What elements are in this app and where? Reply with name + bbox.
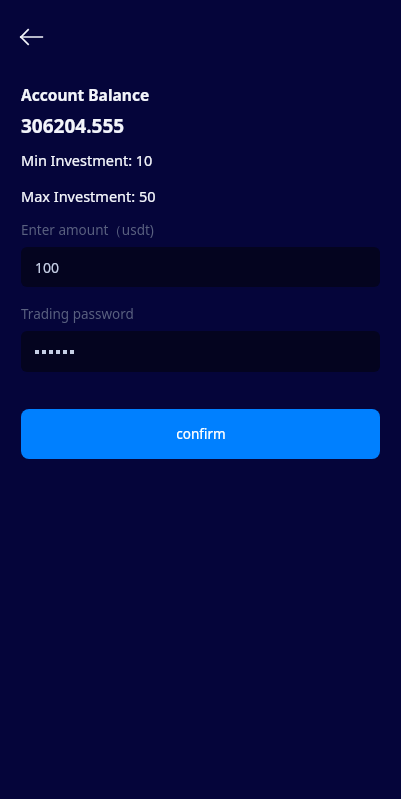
staticText: Max Investment: 50 (21, 186, 156, 206)
staticText: 306204.555 (21, 113, 125, 139)
staticText: Min Investment: 10 (21, 150, 153, 170)
button[interactable]: confirm (21, 409, 380, 459)
staticText: Account Balance (21, 84, 150, 105)
button[interactable]: 100 (21, 247, 380, 287)
staticText: Enter amount（usdt) (21, 221, 154, 239)
staticText: Trading password (21, 305, 134, 323)
staticText: 100 (35, 258, 60, 277)
button[interactable]: Back (11, 17, 51, 57)
button[interactable] (21, 331, 380, 372)
staticText: confirm (176, 425, 226, 443)
